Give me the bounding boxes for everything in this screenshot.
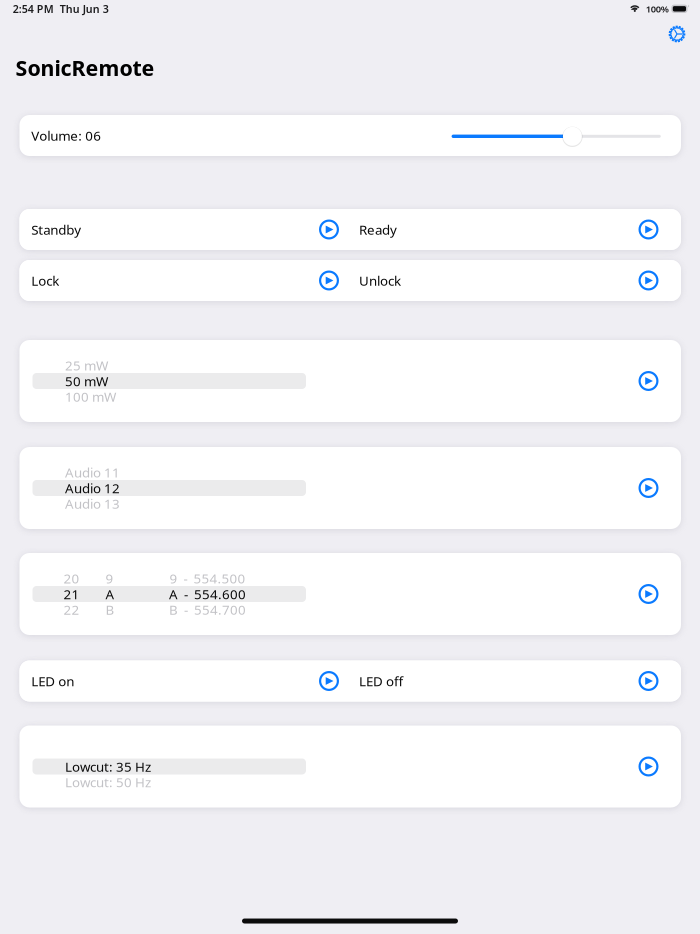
staticText: Standby: [31, 221, 81, 238]
button[interactable]: Unlock: [350, 260, 681, 301]
button[interactable]: Send channel: [628, 574, 668, 614]
staticText: 22: [63, 601, 79, 618]
button[interactable]: Settings: [657, 14, 697, 54]
staticText: Unlock: [359, 272, 401, 289]
button[interactable]: Ready: [350, 209, 681, 250]
staticText: 100 mW: [65, 388, 116, 405]
staticText: 50 mW: [65, 372, 108, 390]
button[interactable]: Send audio channel: [628, 468, 668, 508]
staticText: Audio 12: [65, 479, 120, 497]
staticText: 20: [63, 569, 79, 587]
staticText: LED on: [31, 672, 74, 690]
staticText: 21: [63, 585, 79, 603]
button[interactable]: Standby: [19, 209, 350, 250]
staticText: B - 554.700: [169, 601, 246, 618]
staticText: A: [105, 585, 114, 603]
button[interactable]: Send lowcut: [628, 746, 668, 786]
staticText: Audio 13: [65, 495, 120, 512]
button[interactable]: LED on: [19, 660, 350, 701]
staticText: Ready: [359, 221, 397, 238]
staticText: 9 - 554.500: [169, 569, 245, 587]
staticText: 25 mW: [65, 356, 108, 374]
staticText: B: [105, 601, 114, 618]
staticText: 9: [105, 569, 113, 587]
staticText: LED off: [359, 672, 403, 690]
staticText: 2:54 PM: [13, 2, 54, 16]
staticText: Audio 11: [65, 463, 120, 481]
staticText: SonicRemote: [15, 54, 154, 82]
staticText: Lowcut: 50 Hz: [65, 773, 151, 791]
staticText: Volume: 06: [31, 127, 101, 144]
staticText: A - 554.600: [169, 585, 246, 603]
staticText: Lowcut: 35 Hz: [65, 758, 151, 775]
button[interactable]: Lock: [19, 260, 350, 301]
staticText: Thu Jun 3: [60, 2, 109, 16]
staticText: 100%: [646, 3, 669, 15]
staticText: Lock: [31, 272, 59, 289]
button[interactable]: LED off: [350, 660, 681, 701]
button[interactable]: Send power: [628, 361, 668, 401]
